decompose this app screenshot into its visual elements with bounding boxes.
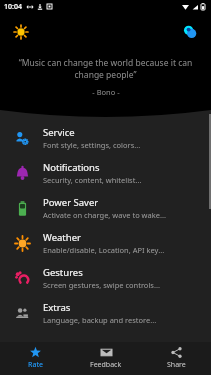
staticText: Screen gestures, swipe controls... [43,280,160,290]
button[interactable]: Weather [0,225,211,260]
staticText: Weather [43,231,81,244]
button[interactable]: Service [0,120,211,155]
staticText: Gestures [43,266,83,279]
staticText: Share [167,360,186,370]
button[interactable]: Share [141,342,211,375]
staticText: Feedback [90,360,122,370]
staticText: Enable/disable, Location, API key... [43,245,165,255]
staticText: Notifications [43,161,100,174]
button[interactable]: Rate [0,342,71,375]
button[interactable]: Feedback [71,342,141,375]
button[interactable]: Theme [177,19,203,45]
button[interactable]: Extras [0,295,211,330]
staticText: 10:04 [4,2,22,12]
staticText: Security, content, whitelist... [43,175,142,185]
button[interactable]: Power Saver [0,190,211,225]
button[interactable]: Weather [8,19,34,45]
staticText: - Bono - [92,87,120,97]
staticText: Rate [28,360,44,370]
staticText: Extras [43,301,71,314]
button[interactable]: Notifications [0,155,211,190]
staticText: Power Saver [43,196,99,209]
staticText: Language, backup and restore... [43,315,157,325]
staticText: Service [43,126,75,139]
button[interactable]: Gestures [0,260,211,295]
staticText: Activate on charge, wave to wake... [43,210,166,220]
staticText: Font style, settings, colors... [43,140,141,150]
staticText: “Music can change the world because it c… [18,57,193,81]
